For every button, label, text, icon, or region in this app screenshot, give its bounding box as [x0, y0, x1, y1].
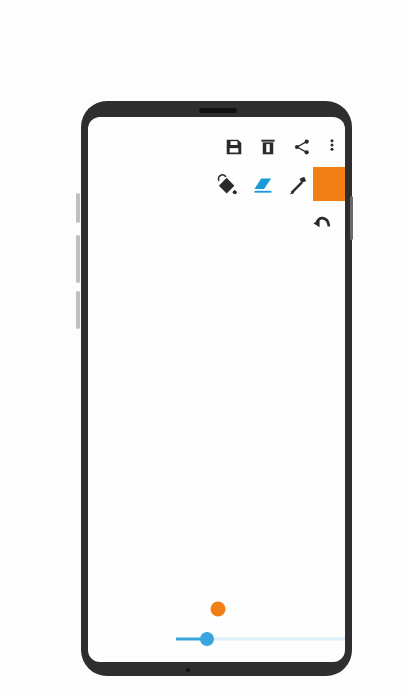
button[interactable]: More options: [321, 134, 343, 156]
button[interactable]: Color picker: [284, 172, 312, 200]
button[interactable]: Eraser: [249, 172, 277, 200]
button[interactable]: Save: [221, 134, 247, 160]
button[interactable]: Delete: [255, 134, 281, 160]
button[interactable]: Fill: [213, 172, 241, 200]
button[interactable]: Share: [289, 134, 315, 160]
button[interactable]: Undo: [308, 209, 336, 237]
